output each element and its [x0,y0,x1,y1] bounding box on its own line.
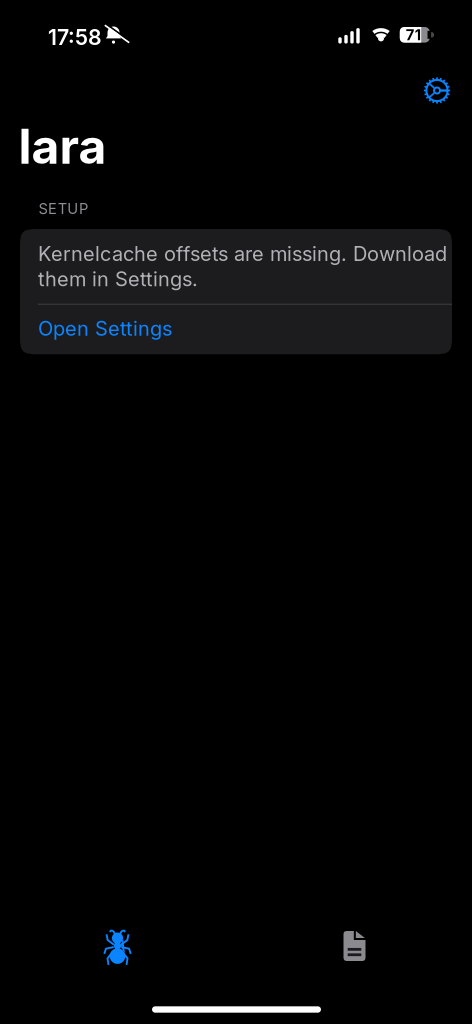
staticText: lara [18,118,106,175]
staticText: Kernelcache offsets are missing. Downloa… [38,242,447,291]
staticText: SETUP [38,200,88,217]
staticText: 71 [406,26,421,43]
button[interactable]: Open Settings [20,305,452,354]
staticText: 17:58 [48,25,102,50]
staticText: Open Settings [38,317,172,340]
button[interactable]: Debugger [17,916,217,980]
button[interactable]: Settings [415,68,459,112]
button[interactable]: Logs [254,914,454,978]
